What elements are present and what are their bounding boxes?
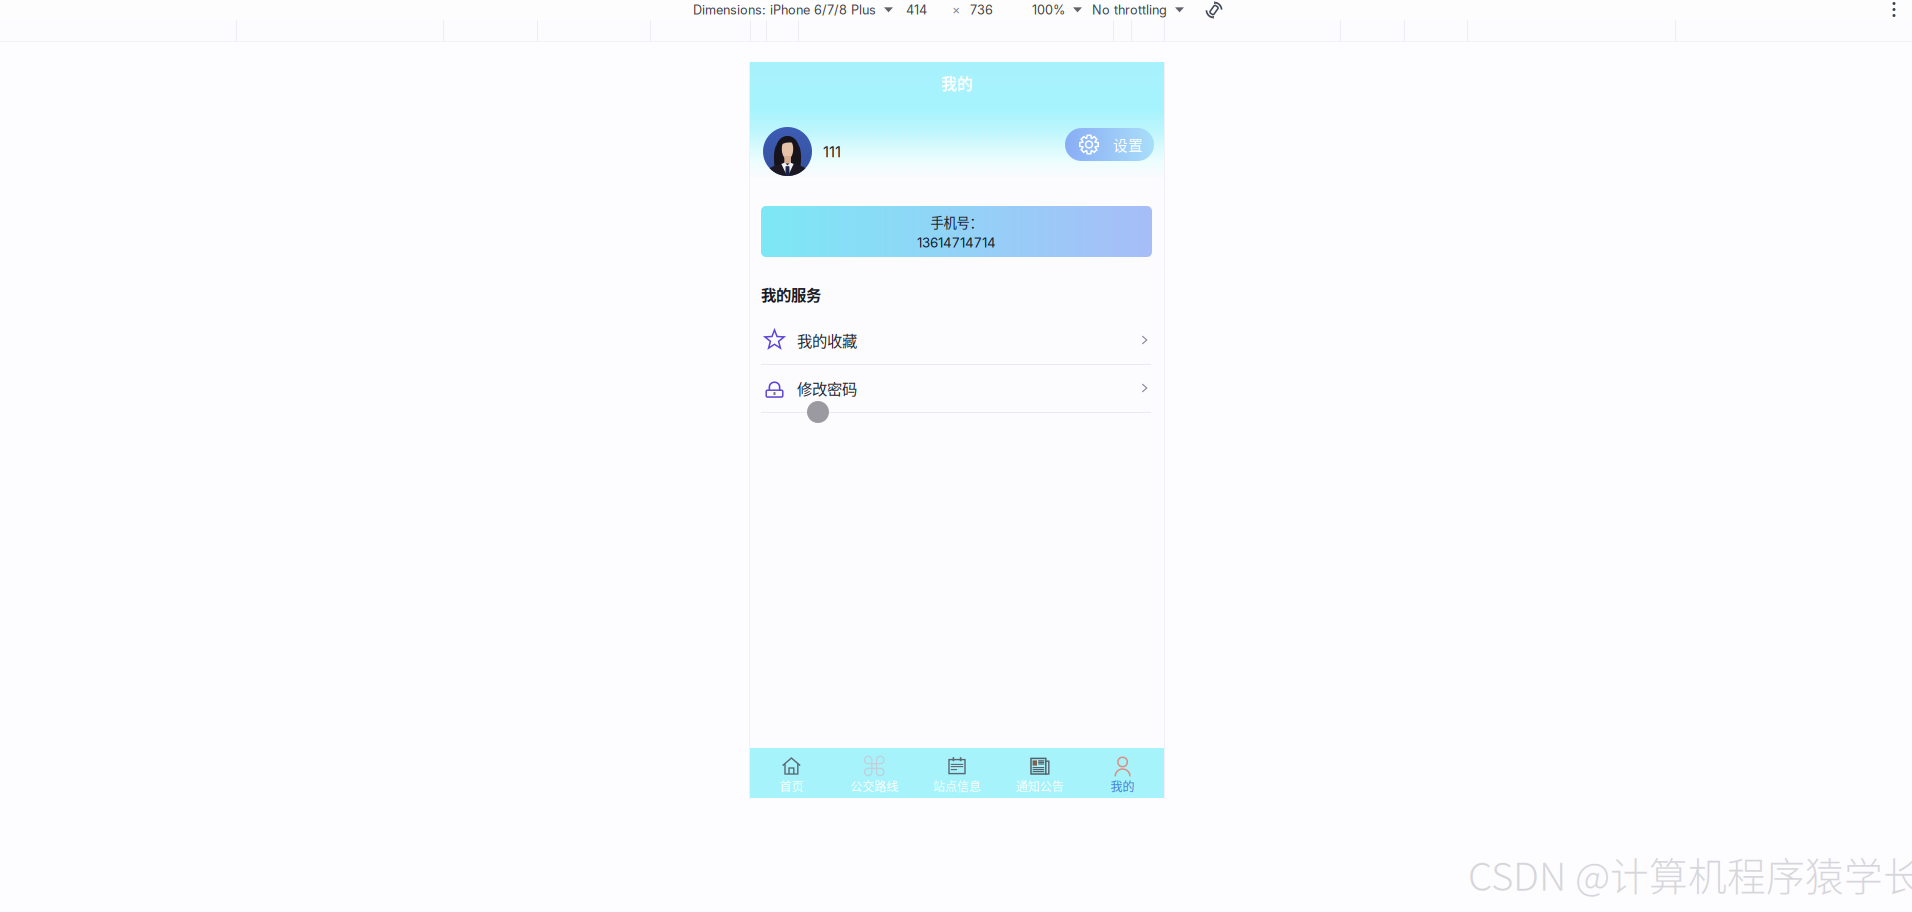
staticText: 我的: [941, 72, 973, 94]
staticText: 设置: [1113, 134, 1143, 155]
button[interactable]: 站点信息: [916, 748, 998, 798]
staticText: 736: [970, 2, 993, 18]
staticText: 首页: [779, 777, 803, 795]
staticText: 我的: [1111, 777, 1135, 795]
button[interactable]: 我的收藏: [750, 316, 1164, 365]
staticText: Dimensions: iPhone 6/7/8 Plus: [693, 2, 876, 18]
staticText: No throttling: [1092, 2, 1167, 18]
button[interactable]: 设置: [1065, 128, 1154, 161]
button[interactable]: 我的: [1081, 748, 1164, 798]
button[interactable]: Dimensions: iPhone 6/7/8 Plus: [693, 0, 893, 20]
staticText: 我的服务: [761, 283, 821, 305]
button[interactable]: More options: [1882, 0, 1906, 19]
staticText: 站点信息: [933, 777, 981, 795]
staticText: 修改密码: [797, 377, 857, 399]
button[interactable]: 通知公告: [998, 748, 1081, 798]
button[interactable]: 首页: [750, 748, 833, 798]
button[interactable]: 修改密码: [750, 364, 1164, 413]
staticText: 100%: [1032, 2, 1065, 18]
staticText: 13614714714: [917, 235, 996, 251]
button[interactable]: 100%: [1032, 0, 1082, 20]
staticText: ×: [952, 2, 960, 18]
staticText: 公交路线: [850, 777, 898, 795]
button[interactable]: Rotate device: [1204, 0, 1224, 20]
staticText: 我的收藏: [797, 329, 857, 351]
button[interactable]: No throttling: [1092, 0, 1184, 20]
staticText: 通知公告: [1016, 777, 1064, 795]
staticText: 111: [823, 143, 841, 161]
staticText: 414: [906, 2, 927, 18]
staticText: CSDN @计算机程序猿学长: [1468, 846, 1912, 902]
button[interactable]: 公交路线: [833, 748, 916, 798]
staticText: 手机号：: [930, 212, 982, 232]
